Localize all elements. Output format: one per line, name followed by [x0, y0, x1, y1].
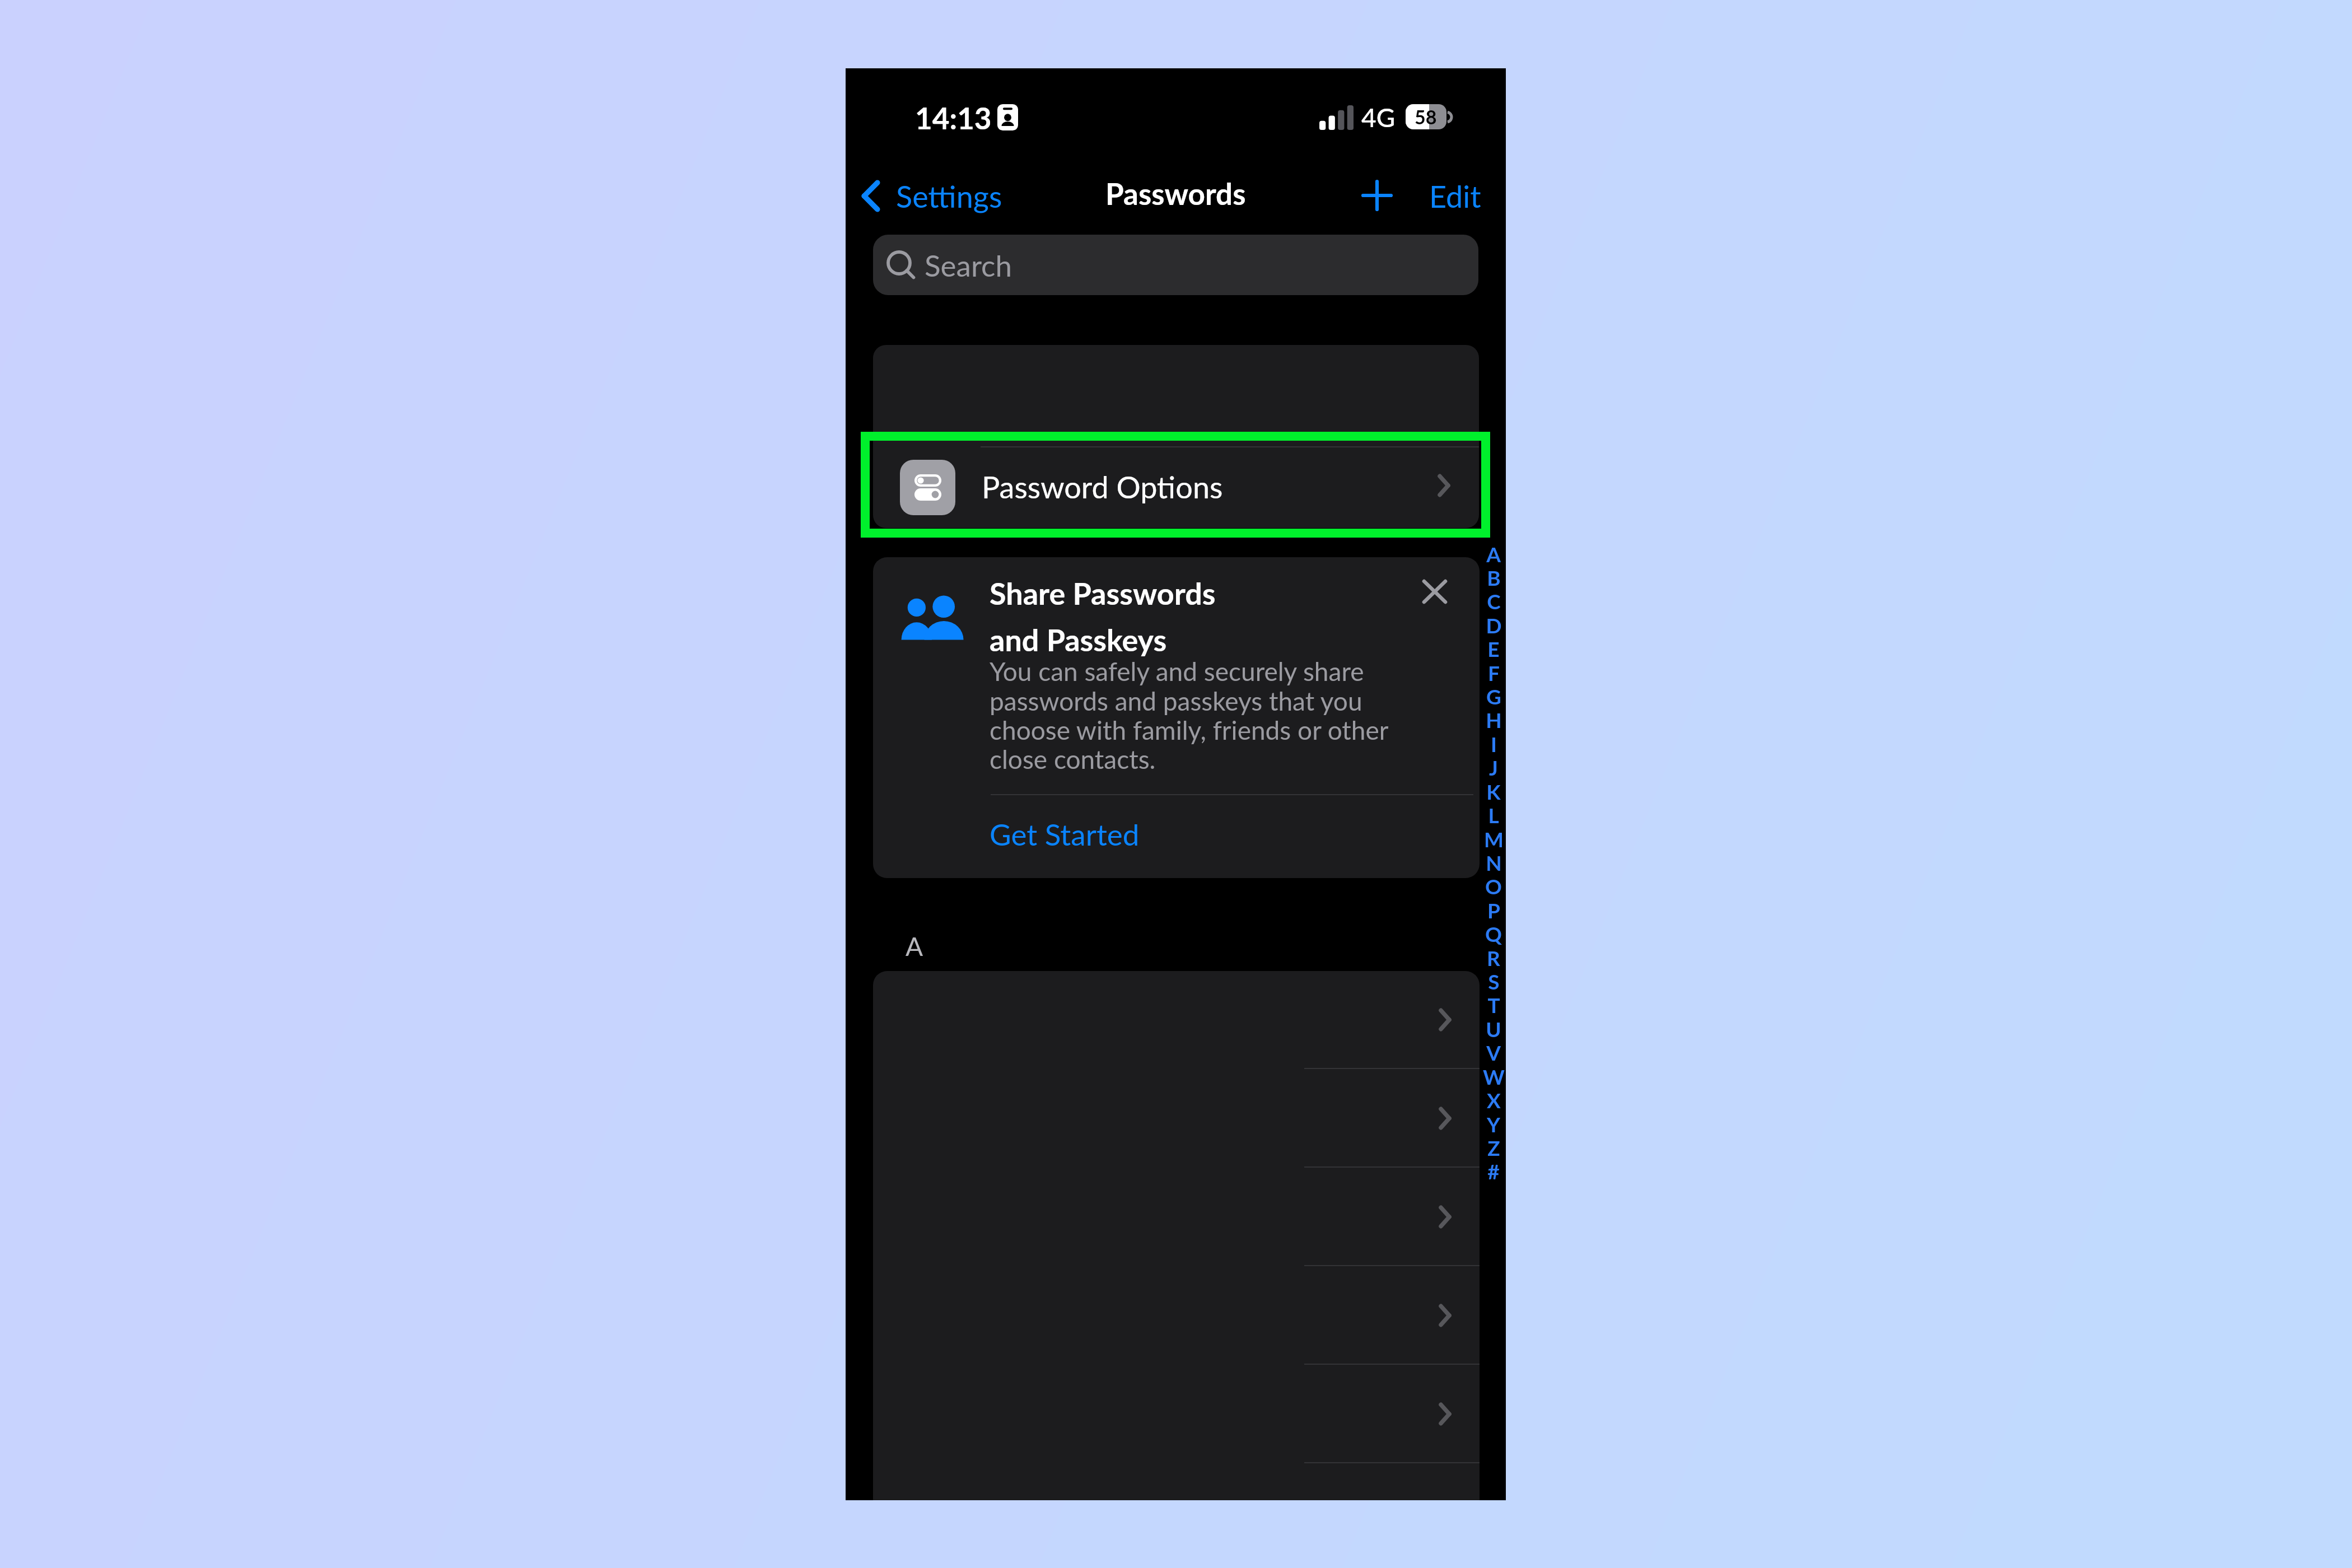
button[interactable]: N: [1482, 850, 1505, 874]
button[interactable]: L: [1482, 802, 1505, 826]
button[interactable]: Q: [1482, 921, 1505, 945]
button[interactable]: Add password: [1351, 170, 1403, 221]
button[interactable]: [873, 971, 1480, 1070]
staticText: C: [1487, 589, 1501, 612]
button[interactable]: [873, 1267, 1480, 1365]
button[interactable]: Get Started: [990, 816, 1140, 852]
staticText: 58: [1415, 105, 1437, 128]
button[interactable]: D: [1482, 613, 1505, 636]
button[interactable]: R: [1482, 945, 1505, 969]
staticText: Get Started: [990, 816, 1140, 852]
staticText: V: [1486, 1040, 1501, 1063]
button[interactable]: Edit: [1422, 172, 1488, 220]
button[interactable]: X: [1482, 1088, 1505, 1111]
button[interactable]: Close: [1410, 567, 1459, 616]
button[interactable]: S: [1482, 969, 1505, 992]
staticText: D: [1486, 613, 1502, 636]
staticText: W: [1483, 1064, 1505, 1088]
button[interactable]: T: [1482, 992, 1505, 1016]
staticText: L: [1488, 802, 1499, 826]
staticText: A: [906, 931, 923, 962]
staticText: Z: [1487, 1135, 1500, 1159]
button[interactable]: Settings: [852, 172, 1015, 220]
staticText: #: [1487, 1159, 1500, 1182]
button[interactable]: [873, 1168, 1480, 1267]
button[interactable]: B: [1482, 565, 1505, 589]
staticText: I: [1491, 731, 1497, 755]
staticText: H: [1486, 707, 1502, 731]
staticText: S: [1488, 969, 1500, 992]
button[interactable]: A: [1482, 542, 1505, 565]
staticText: T: [1487, 992, 1500, 1016]
button[interactable]: [873, 1365, 1480, 1464]
button[interactable]: Y: [1482, 1112, 1505, 1135]
staticText: G: [1486, 684, 1501, 707]
staticText: Q: [1485, 921, 1502, 945]
button[interactable]: G: [1482, 684, 1505, 707]
staticText: and Passkeys: [990, 622, 1167, 658]
staticText: O: [1485, 874, 1502, 897]
staticText: Settings: [896, 178, 1002, 214]
button[interactable]: F: [1482, 660, 1505, 684]
staticText: Search: [925, 248, 1012, 283]
button[interactable]: #: [1482, 1159, 1505, 1182]
button[interactable]: U: [1482, 1016, 1505, 1040]
staticText: K: [1486, 779, 1501, 802]
staticText: P: [1487, 898, 1500, 921]
button[interactable]: [873, 1070, 1480, 1168]
button[interactable]: V: [1482, 1040, 1505, 1063]
staticText: A: [1486, 542, 1501, 565]
button[interactable]: J: [1482, 755, 1505, 778]
button[interactable]: O: [1482, 874, 1505, 897]
button[interactable]: W: [1482, 1064, 1505, 1088]
button[interactable]: K: [1482, 779, 1505, 802]
button[interactable]: Search: [873, 235, 1478, 295]
button[interactable]: H: [1482, 707, 1505, 731]
staticText: N: [1486, 850, 1502, 874]
button[interactable]: I: [1482, 731, 1505, 755]
staticText: J: [1489, 755, 1498, 778]
button[interactable]: P: [1482, 898, 1505, 921]
staticText: E: [1487, 636, 1500, 660]
button[interactable]: E: [1482, 636, 1505, 660]
staticText: F: [1488, 660, 1500, 684]
staticText: Password Options: [982, 469, 1223, 505]
staticText: M: [1484, 827, 1504, 850]
button[interactable]: M: [1482, 827, 1505, 850]
button[interactable]: Password Options: [873, 447, 1479, 528]
staticText: Passwords: [1105, 176, 1246, 212]
staticText: You can safely and securely share passwo…: [990, 656, 1438, 774]
staticText: R: [1487, 945, 1500, 969]
staticText: Y: [1487, 1112, 1500, 1135]
staticText: X: [1487, 1088, 1501, 1111]
button[interactable]: Z: [1482, 1135, 1505, 1159]
staticText: B: [1487, 565, 1501, 589]
staticText: Edit: [1429, 178, 1481, 214]
staticText: Share Passwords: [990, 575, 1216, 612]
staticText: U: [1486, 1016, 1501, 1040]
staticText: 4G: [1361, 102, 1396, 133]
button[interactable]: C: [1482, 589, 1505, 612]
staticText: 14:13: [915, 100, 992, 136]
